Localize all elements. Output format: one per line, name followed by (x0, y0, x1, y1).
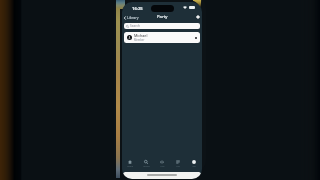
staticText: List (176, 165, 180, 168)
button[interactable]: Home (122, 158, 138, 168)
staticText: Search (130, 24, 141, 28)
staticText: Party (157, 14, 168, 20)
button[interactable]: Search (138, 158, 154, 168)
button[interactable]: Add (194, 14, 202, 20)
staticText: Home (127, 165, 133, 168)
button[interactable]: Search (124, 23, 200, 29)
button[interactable]: Library (122, 14, 142, 21)
button[interactable]: List (170, 158, 186, 168)
button[interactable]: You (186, 158, 202, 168)
staticText: Member (134, 38, 145, 42)
staticText: Library (127, 15, 139, 20)
staticText: Play (160, 165, 165, 168)
staticText: 16:25 (132, 6, 143, 12)
staticText: You (192, 165, 196, 168)
staticText: Search (143, 165, 150, 168)
staticText: Michael (134, 33, 148, 38)
button[interactable]: Michael (124, 32, 200, 43)
button[interactable]: Play (154, 158, 170, 168)
